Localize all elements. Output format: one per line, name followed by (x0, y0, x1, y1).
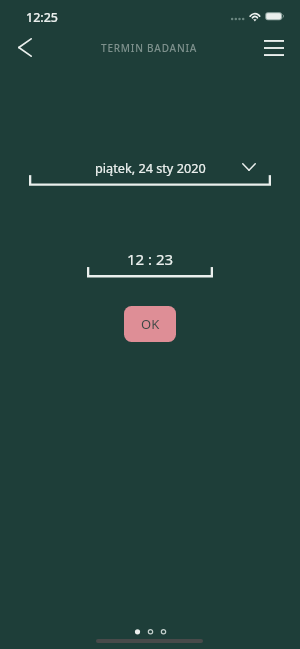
button[interactable]: piątek, 24 sty 2020 (29, 155, 271, 186)
staticText: 12 : 23 (127, 249, 174, 269)
button[interactable]: Menu (256, 25, 298, 70)
staticText: TERMIN BADANIA (101, 41, 198, 55)
button[interactable]: Back (2, 24, 44, 70)
staticText: 12:25 (26, 9, 59, 26)
staticText: OK (141, 315, 160, 333)
button[interactable]: Page 3 (157, 625, 170, 638)
staticText: piątek, 24 sty 2020 (95, 159, 206, 176)
button[interactable]: Page 2 (144, 625, 157, 638)
button[interactable]: 12 : 23 (87, 250, 213, 278)
button[interactable]: Page 1 (131, 625, 144, 638)
button[interactable]: OK (124, 306, 176, 342)
